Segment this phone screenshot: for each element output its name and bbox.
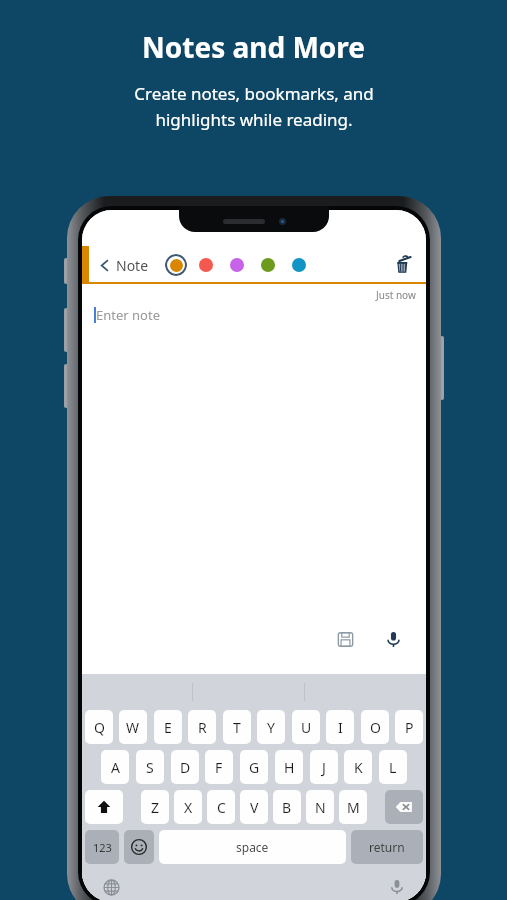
staticText: K — [354, 758, 363, 777]
staticText: S — [146, 758, 154, 777]
button[interactable]: J — [310, 750, 338, 784]
button[interactable]: Z — [141, 790, 169, 824]
button[interactable]: Colour option — [230, 258, 244, 272]
staticText: D — [180, 758, 191, 777]
staticText: Just now — [376, 288, 416, 302]
staticText: G — [249, 758, 260, 777]
staticText: Q — [94, 718, 105, 737]
button[interactable]: space — [159, 830, 346, 864]
staticText: R — [198, 718, 207, 737]
staticText: W — [126, 718, 140, 737]
staticText: H — [284, 758, 295, 777]
staticText: Note — [116, 256, 149, 275]
staticText: N — [315, 798, 326, 817]
button[interactable]: Shift — [85, 790, 123, 824]
button[interactable]: A — [101, 750, 129, 784]
button[interactable]: return — [351, 830, 423, 864]
button[interactable]: Colour option — [261, 258, 275, 272]
button[interactable]: L — [379, 750, 407, 784]
button[interactable]: I — [326, 710, 354, 744]
staticText: I — [338, 718, 343, 737]
button[interactable]: X — [174, 790, 202, 824]
staticText: P — [405, 718, 414, 737]
button[interactable]: 123 — [85, 830, 119, 864]
staticText: Y — [267, 718, 275, 737]
button[interactable]: U — [292, 710, 320, 744]
staticText: T — [233, 718, 241, 737]
staticText: E — [164, 718, 172, 737]
button[interactable]: G — [240, 750, 268, 784]
staticText: B — [282, 798, 292, 817]
button[interactable]: Colour option — [292, 258, 306, 272]
button[interactable]: Save note — [330, 624, 360, 654]
staticText: space — [236, 839, 269, 855]
button[interactable]: C — [207, 790, 235, 824]
button[interactable]: R — [188, 710, 216, 744]
staticText: V — [250, 798, 259, 817]
staticText: Z — [151, 798, 160, 817]
button[interactable]: W — [119, 710, 147, 744]
staticText: L — [389, 758, 397, 777]
staticText: C — [217, 798, 226, 817]
staticText: O — [370, 718, 381, 737]
staticText: A — [111, 758, 120, 777]
staticText: U — [301, 718, 312, 737]
button[interactable]: Emoji — [124, 830, 154, 864]
staticText: F — [215, 758, 223, 777]
staticText: Create notes, bookmarks, and highlights … — [134, 82, 374, 131]
button[interactable]: P — [395, 710, 423, 744]
button[interactable]: F — [205, 750, 233, 784]
button[interactable]: Colour option — [199, 258, 213, 272]
button[interactable]: Change keyboard language — [98, 874, 124, 900]
button[interactable]: Backspace — [385, 790, 423, 824]
staticText: 123 — [93, 840, 112, 855]
button[interactable]: Y — [257, 710, 285, 744]
button[interactable]: O — [361, 710, 389, 744]
staticText: X — [184, 798, 193, 817]
button[interactable]: H — [275, 750, 303, 784]
staticText: Enter note — [96, 306, 160, 324]
staticText: M — [347, 798, 360, 817]
button[interactable]: Voice input — [378, 624, 408, 654]
staticText: Notes and More — [142, 28, 365, 66]
button[interactable]: E — [154, 710, 182, 744]
button[interactable]: V — [240, 790, 268, 824]
button[interactable]: Q — [85, 710, 113, 744]
button[interactable]: M — [339, 790, 367, 824]
button[interactable]: B — [273, 790, 301, 824]
button[interactable]: D — [171, 750, 199, 784]
button[interactable]: Note — [96, 252, 151, 279]
button[interactable]: Dictation — [384, 874, 410, 900]
button[interactable]: Orange colour selected — [165, 254, 187, 276]
button[interactable]: S — [136, 750, 164, 784]
button[interactable]: Delete note — [390, 252, 416, 278]
staticText: J — [322, 758, 326, 777]
button[interactable]: T — [223, 710, 251, 744]
staticText: return — [369, 839, 405, 855]
button[interactable]: K — [344, 750, 372, 784]
button[interactable]: N — [306, 790, 334, 824]
